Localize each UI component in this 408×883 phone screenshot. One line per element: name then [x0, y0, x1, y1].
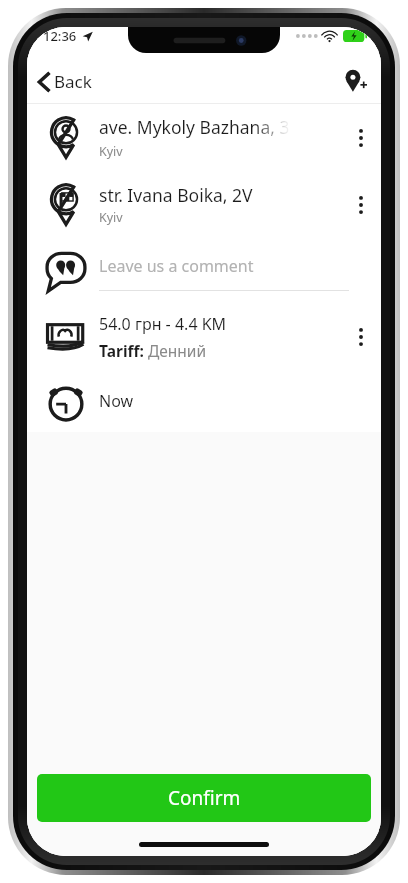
staticText: Leave us a comment	[99, 255, 254, 277]
button[interactable]: More options	[347, 119, 375, 157]
staticText: Now	[99, 390, 349, 412]
staticText: 12:36	[43, 27, 77, 45]
button[interactable]: Confirm	[37, 774, 371, 822]
button[interactable]: Leave us a comment	[27, 238, 381, 304]
button[interactable]: More options	[347, 186, 375, 224]
button[interactable]: ave. Mykoly Bazhana, 3	[27, 104, 381, 171]
button[interactable]: 54.0 грн - 4.4 KM	[27, 304, 381, 370]
button[interactable]: More options	[347, 318, 375, 356]
staticText: Kyiv	[99, 143, 123, 160]
button[interactable]: Back	[27, 64, 104, 99]
staticText: str. Ivana Boika, 2V	[99, 183, 253, 207]
button[interactable]: Now	[27, 370, 381, 432]
staticText: 54.0 грн - 4.4 KM	[99, 313, 227, 335]
staticText: ave. Mykoly Bazhana, 3	[99, 115, 290, 139]
staticText: Back	[54, 70, 92, 93]
staticText: Tariff: Денний	[99, 340, 207, 361]
staticText: Confirm	[168, 785, 241, 811]
button[interactable]: Add place	[331, 61, 381, 101]
button[interactable]: str. Ivana Boika, 2V	[27, 171, 381, 238]
staticText: Kyiv	[99, 209, 123, 226]
